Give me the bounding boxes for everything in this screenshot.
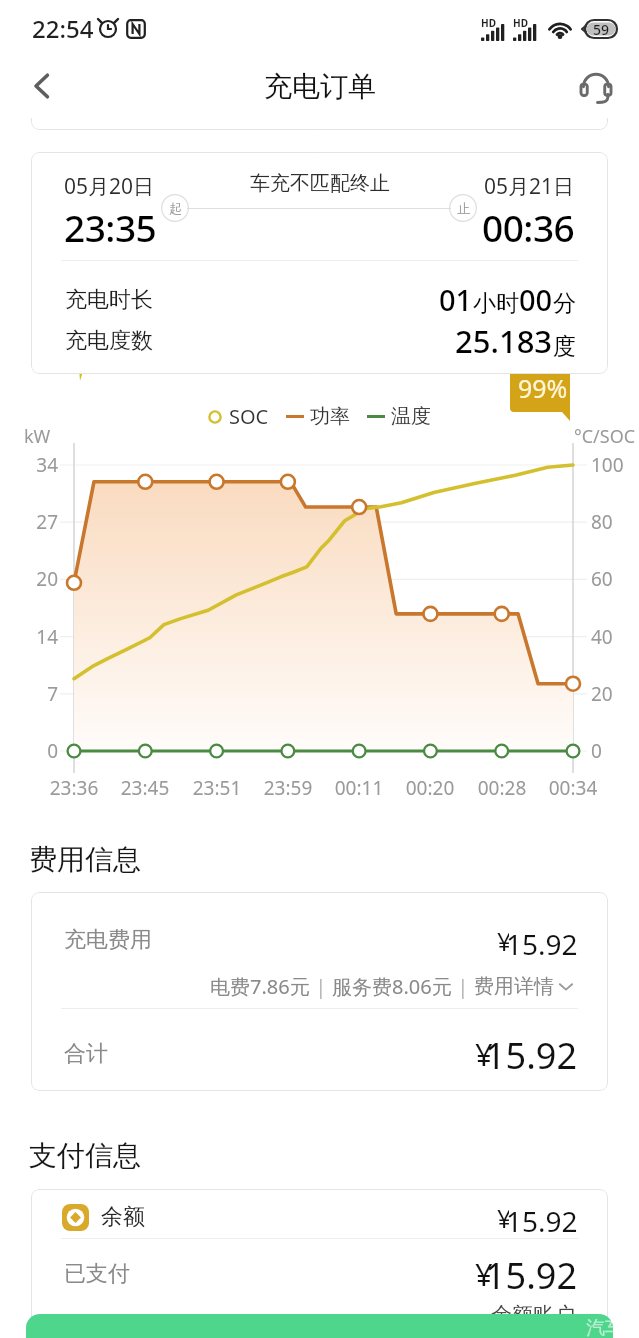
staticText: 23:45 [115,775,175,801]
staticText: 费用详情 [474,974,554,999]
staticText: 25.183 [455,320,553,362]
staticText: 27 [30,509,58,535]
staticText: 20 [591,681,613,707]
button[interactable] [26,1314,613,1338]
button[interactable]: Back [12,56,72,116]
staticText: 7 [30,681,58,707]
staticText: 14 [30,624,58,650]
staticText: 余额账户 [491,1302,575,1328]
staticText: 23:36 [44,775,104,801]
staticText: °C/SOC [574,424,636,449]
staticText: 80 [591,509,613,535]
staticText: 00:28 [472,775,532,801]
staticText: 15.92 [506,925,578,955]
staticText: 00:34 [543,775,603,801]
staticText: 电费7.86元 [210,973,310,1000]
staticText: 59 [593,20,610,39]
staticText: ¥ [497,1201,509,1231]
staticText: 00 [519,280,553,319]
staticText: | [310,973,332,1000]
staticText: 度 [553,332,576,361]
staticText: kW [24,424,51,449]
staticText: 服务费8.06元 [332,973,452,1000]
staticText: 01 [439,280,473,319]
staticText: 23:59 [258,775,318,801]
staticText: 已支付 [64,1260,130,1288]
staticText: SOC [229,403,269,430]
staticText: 23:35 [64,202,157,252]
staticText: 15.92 [506,1202,578,1232]
staticText: 充电订单 [264,69,376,104]
staticText: 20 [30,566,58,592]
staticText: 100 [591,452,624,478]
staticText: 00:20 [400,775,460,801]
button[interactable]: 05月20日 [31,152,608,374]
staticText: 合计 [64,1040,108,1068]
staticText: 温度 [391,404,431,429]
staticText: 05月21日 [484,172,575,201]
staticText: 车充不匹配终止 [250,171,390,196]
staticText: 15.92 [485,1251,578,1297]
staticText: 充电费用 [64,926,152,954]
staticText: HD [481,16,496,30]
staticText: 0 [30,738,58,764]
staticText: 分 [553,289,576,318]
staticText: 余额 [101,1203,145,1231]
staticText: HD [513,16,528,30]
staticText: 05月20日 [64,172,155,201]
staticText: 22:54 [32,12,94,45]
staticText: 起 [169,200,182,216]
button[interactable]: Customer service [566,56,626,116]
staticText: 小时 [473,289,519,318]
staticText: | [452,973,474,1000]
staticText: ¥ [475,1253,489,1295]
staticText: ¥ [497,924,509,954]
staticText: 99% [518,371,568,405]
staticText: 止 [457,200,470,216]
staticText: 功率 [310,404,350,429]
staticText: 60 [591,566,613,592]
staticText: 00:11 [329,775,389,801]
staticText: 34 [30,452,58,478]
staticText: 充电时长 [65,286,153,314]
staticText: 费用信息 [29,842,141,877]
staticText: 0 [591,738,602,764]
staticText: 支付信息 [29,1138,141,1173]
staticText: 汽车之家 [586,1316,639,1338]
staticText: 40 [591,624,613,650]
staticText: 15.92 [485,1031,578,1077]
staticText: 充电度数 [65,327,153,355]
staticText: ¥ [475,1033,489,1075]
staticText: 00:36 [482,202,575,252]
staticText: 23:51 [187,775,247,801]
